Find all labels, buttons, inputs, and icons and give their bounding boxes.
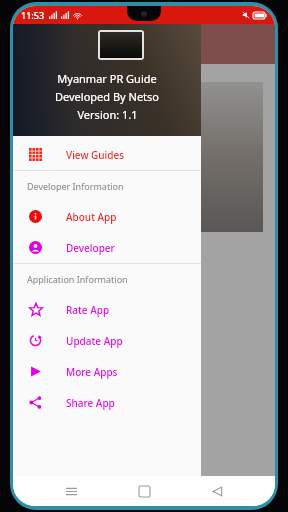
staticText: Update App (66, 334, 123, 348)
staticText: Version: 1.1 (77, 107, 138, 122)
button[interactable]: Developer (13, 232, 201, 263)
button[interactable]: Update App (13, 325, 201, 356)
staticText: Myanmar PR Guide (57, 71, 157, 86)
button[interactable]: About App (13, 201, 201, 232)
button[interactable]: Share App (13, 387, 201, 418)
staticText: Share App (66, 396, 115, 410)
staticText: About App (66, 210, 117, 224)
button[interactable]: View Guides (13, 139, 201, 170)
button[interactable]: Back (202, 476, 232, 506)
staticText: Developer Information (27, 180, 124, 192)
staticText: Application Information (27, 273, 128, 285)
button[interactable]: More Apps (13, 356, 201, 387)
staticText: Rate App (66, 303, 110, 317)
staticText: Developer (66, 241, 115, 255)
staticText: Developed By Netso (55, 89, 159, 104)
staticText: More Apps (66, 365, 118, 379)
button[interactable]: Myanmar PR Guide (13, 24, 201, 136)
button[interactable]: Home (129, 476, 159, 506)
staticText: View Guides (66, 148, 125, 162)
staticText: 11:53 (21, 9, 45, 21)
button[interactable]: Rate App (13, 294, 201, 325)
button[interactable]: Recent apps (56, 476, 86, 506)
